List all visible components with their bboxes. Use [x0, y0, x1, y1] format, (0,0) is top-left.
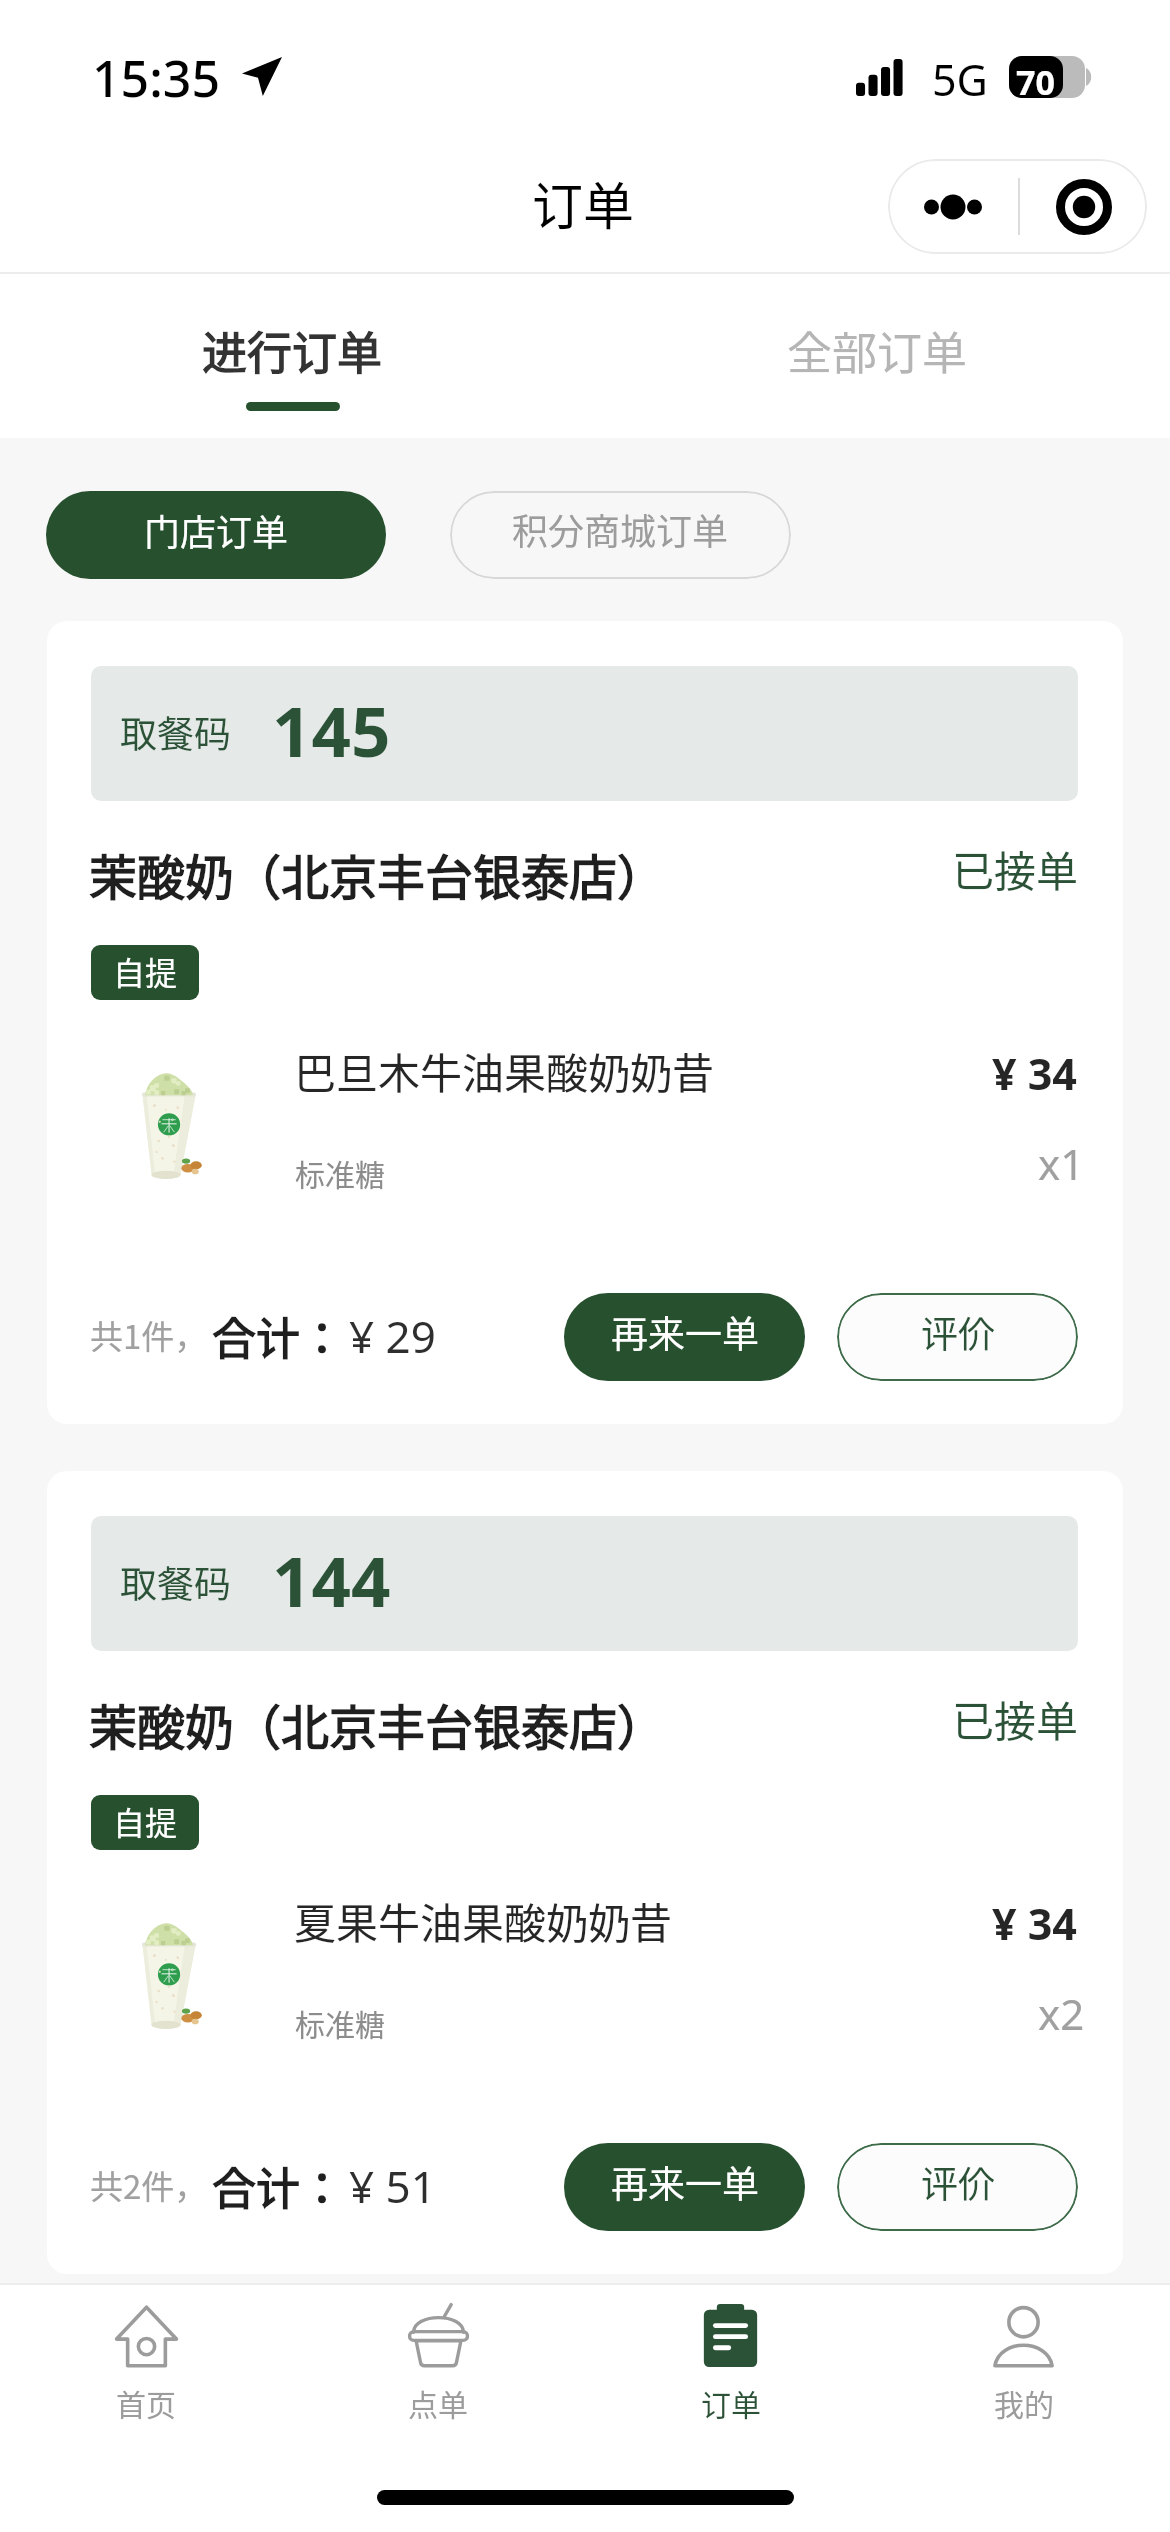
staticText: 自提	[113, 948, 178, 994]
staticText: 评价	[921, 1305, 995, 1359]
staticText: 共1件，	[90, 1311, 208, 1359]
staticText: ¥ 34	[992, 1894, 1077, 1953]
staticText: 标准糖	[295, 2001, 385, 2044]
staticText: 进行订单	[202, 318, 383, 383]
button[interactable]: 再来一单	[564, 2143, 805, 2231]
button[interactable]: 点单	[292, 2285, 584, 2442]
button[interactable]: More options	[888, 159, 1018, 254]
staticText: ¥ 51	[349, 2156, 436, 2216]
staticText: 门店订单	[144, 504, 289, 556]
staticText: 再来一单	[611, 1305, 759, 1359]
button[interactable]: 取餐码	[47, 1471, 1123, 2274]
staticText: x2	[1038, 1985, 1085, 2042]
button[interactable]: 评价	[837, 1293, 1078, 1381]
staticText: ¥ 29	[349, 1306, 436, 1366]
staticText: 标准糖	[295, 1151, 385, 1194]
button[interactable]: 全部订单	[585, 274, 1170, 438]
staticText: 订单	[701, 2381, 761, 2424]
button[interactable]: 门店订单	[46, 491, 386, 579]
staticText: 145	[272, 683, 391, 777]
staticText: 144	[272, 1533, 391, 1627]
staticText: 订单	[532, 166, 635, 240]
staticText: 全部订单	[787, 318, 968, 383]
button[interactable]: 取餐码	[47, 621, 1123, 1424]
staticText: 再来一单	[611, 2155, 759, 2209]
staticText: 夏果牛油果酸奶奶昔	[294, 1890, 673, 1951]
staticText: 评价	[921, 2155, 995, 2209]
staticText: 茉酸奶（北京丰台银泰店）	[89, 839, 666, 909]
staticText: 茉酸奶（北京丰台银泰店）	[89, 1689, 666, 1759]
staticText: 取餐码	[120, 1555, 231, 1609]
staticText: 5G	[932, 50, 988, 109]
button[interactable]: 评价	[837, 2143, 1078, 2231]
button[interactable]: 再来一单	[564, 1293, 805, 1381]
staticText: 取餐码	[120, 705, 231, 759]
button[interactable]: 积分商城订单	[450, 491, 791, 579]
staticText: 已接单	[952, 1688, 1079, 1749]
button[interactable]: 自提	[91, 945, 199, 1000]
staticText: 首页	[116, 2381, 176, 2424]
button[interactable]: 订单	[584, 2285, 877, 2442]
staticText: ¥ 34	[992, 1044, 1077, 1103]
button[interactable]: 我的	[877, 2285, 1170, 2442]
staticText: 已接单	[952, 838, 1079, 899]
button[interactable]: 自提	[91, 1795, 199, 1850]
staticText: 积分商城订单	[512, 503, 729, 555]
staticText: 我的	[994, 2381, 1054, 2424]
staticText: 点单	[408, 2381, 468, 2424]
staticText: 巴旦木牛油果酸奶奶昔	[294, 1040, 715, 1101]
staticText: 合计：	[212, 2154, 344, 2218]
button[interactable]: 首页	[0, 2285, 292, 2442]
staticText: 合计：	[212, 1304, 344, 1368]
staticText: 自提	[113, 1798, 178, 1844]
staticText: 70	[1016, 59, 1055, 105]
staticText: 共2件，	[90, 2161, 208, 2209]
button[interactable]: Close mini program	[1020, 159, 1147, 254]
staticText: x1	[1038, 1135, 1085, 1192]
button[interactable]: 进行订单	[0, 274, 585, 438]
staticText: 15:35	[92, 44, 220, 112]
